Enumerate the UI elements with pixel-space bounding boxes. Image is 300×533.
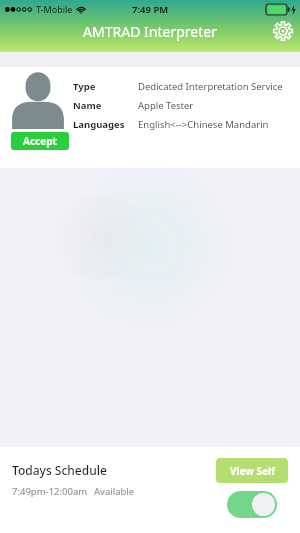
button[interactable]: Availability toggle <box>227 491 277 518</box>
staticText: Languages <box>73 118 125 131</box>
staticText: Dedicated Interpretation Service <box>138 80 283 93</box>
staticText: Available <box>94 485 135 498</box>
staticText: 7:49pm-12:00am <box>12 485 88 498</box>
staticText: Type <box>73 80 96 93</box>
staticText: Todays Schedule <box>12 462 107 478</box>
staticText: Apple Tester <box>138 99 194 112</box>
button[interactable]: View Self <box>216 458 288 483</box>
button[interactable]: Settings <box>266 14 300 48</box>
button[interactable]: Accept <box>11 132 69 150</box>
staticText: View Self <box>230 464 275 478</box>
staticText: Accept <box>23 134 57 148</box>
staticText: AMTRAD Interpreter <box>0 22 300 41</box>
staticText: 7:49 PM <box>132 3 169 16</box>
button[interactable]: Accept <box>0 67 300 168</box>
staticText: Name <box>73 99 102 112</box>
staticText: English<-->Chinese Mandarin <box>138 118 269 131</box>
staticText: T-Mobile <box>36 3 73 15</box>
